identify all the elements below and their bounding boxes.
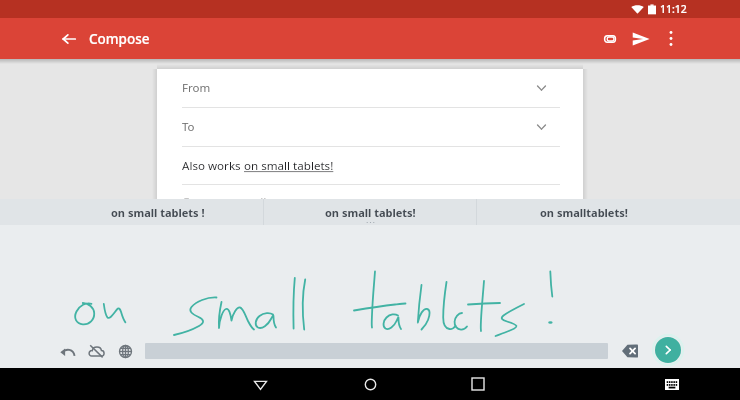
button[interactable]: Back [244,368,276,400]
button[interactable]: Back [48,18,89,59]
staticText: Compose [89,30,150,48]
button[interactable]: Send [625,18,656,59]
button[interactable]: Attach file [594,18,625,59]
staticText: on small tablets! [325,205,416,220]
staticText: Compose email [182,194,267,199]
button[interactable]: Undo [56,340,78,362]
button[interactable]: Backspace [621,343,639,358]
button[interactable]: on small tablets! [264,199,476,225]
button[interactable]: on smalltablets! [477,199,691,225]
button[interactable]: Language [114,340,136,362]
button[interactable]: Switch keyboard [656,368,688,400]
staticText: on small tablets ! [111,205,205,220]
staticText: 11:12 [660,2,687,16]
staticText: To [182,119,195,135]
button[interactable]: Home [354,368,386,400]
staticText: on smalltablets! [540,205,628,220]
button[interactable]: Recent apps [462,368,494,400]
button[interactable]: Enter [655,337,681,363]
staticText: on small tablets! [244,158,334,174]
staticText: From [182,80,211,96]
button[interactable]: Offline [85,340,107,362]
staticText: Also works [182,158,244,174]
button[interactable]: on small tablets ! [52,199,263,225]
button[interactable]: More options [656,18,685,59]
